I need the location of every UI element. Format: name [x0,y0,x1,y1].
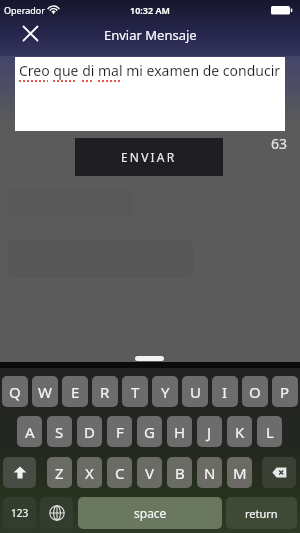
staticText: J [207,422,212,442]
staticText: C [115,463,125,483]
staticText: H [174,422,186,442]
staticText: Q [9,382,21,402]
staticText: W [38,382,52,402]
staticText: Z [55,463,64,483]
button[interactable]: B [167,457,192,488]
button[interactable]: X [77,457,102,488]
staticText: F [116,422,124,442]
button[interactable]: ENVIAR [75,138,223,176]
staticText: V [145,463,155,483]
staticText: M [233,463,247,483]
staticText: N [204,463,216,483]
staticText: space [134,505,167,521]
staticText: Enviar Mensaje [104,26,197,44]
staticText: L [266,422,274,442]
staticText: Operador [4,4,45,16]
button[interactable]: F [107,416,132,447]
button[interactable]: Creo que di mal mi examen de conducir [15,57,285,131]
button[interactable]: V [137,457,162,488]
button[interactable]: I [212,376,238,407]
staticText: A [25,422,35,442]
button[interactable]: Z [47,457,72,488]
staticText: G [144,422,155,442]
button[interactable]: G [137,416,162,447]
button[interactable]: N [197,457,222,488]
button[interactable]: W [32,376,58,407]
button[interactable]: O [242,376,268,407]
button[interactable]: E [62,376,88,407]
staticText: E [71,382,80,402]
button[interactable]: M [227,457,252,488]
button[interactable]: U [182,376,208,407]
staticText: X [85,463,94,483]
staticText: S [55,422,64,442]
button[interactable]: T [122,376,148,407]
staticText: K [235,422,245,442]
button[interactable]: H [167,416,192,447]
staticText: P [280,382,290,402]
staticText: ENVIAR [121,149,177,165]
staticText: Creo que di mal mi examen de conducir [19,61,281,80]
staticText: B [175,463,185,483]
button[interactable] [40,497,73,529]
button[interactable] [3,457,36,488]
button[interactable]: Q [2,376,28,407]
button[interactable]: S [47,416,72,447]
button[interactable]: return [226,497,297,529]
staticText: 63 [271,134,288,153]
button[interactable]: space [78,497,222,529]
staticText: D [84,422,95,442]
button[interactable] [262,457,296,488]
button[interactable]: L [257,416,282,447]
button[interactable]: A [17,416,42,447]
button[interactable]: K [227,416,252,447]
staticText: U [190,382,201,402]
staticText: return [245,506,278,521]
staticText: 123 [11,506,29,520]
staticText: Y [161,382,170,402]
staticText: 10:32 AM [130,4,170,16]
button[interactable]: Y [152,376,178,407]
button[interactable]: P [272,376,298,407]
staticText: O [249,382,261,402]
button[interactable]: R [92,376,118,407]
button[interactable]: 123 [3,497,36,529]
button[interactable]: C [107,457,132,488]
button[interactable] [16,20,44,46]
button[interactable]: D [77,416,102,447]
staticText: R [100,382,110,402]
staticText: I [222,382,228,402]
staticText: T [131,382,140,402]
button[interactable]: J [197,416,222,447]
